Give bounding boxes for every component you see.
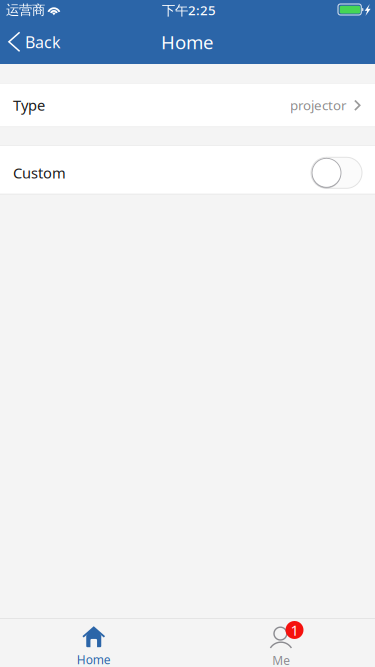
staticText: Me [272,652,290,667]
staticText: 下午2:25 [162,1,216,19]
button[interactable]: Custom [311,157,362,188]
staticText: Home [161,30,214,54]
button[interactable]: 1 [187,619,375,667]
staticText: Home [77,651,111,667]
staticText: Type [13,95,45,115]
staticText: 运营商 [6,2,45,18]
staticText: projector [290,96,347,114]
staticText: 1 [290,620,298,640]
staticText: Back [25,31,61,53]
button[interactable]: Home [0,619,187,667]
staticText: Custom [13,163,66,183]
button[interactable]: Back [0,20,71,64]
button[interactable]: Type [0,84,375,127]
